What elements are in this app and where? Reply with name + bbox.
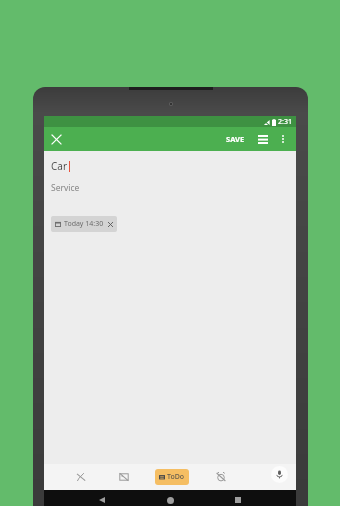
staticText: Car: [51, 159, 68, 173]
button[interactable]: Voice input: [271, 466, 288, 483]
button[interactable]: Home: [160, 490, 180, 506]
button[interactable]: Recents: [228, 490, 248, 506]
button[interactable]: List options: [254, 130, 272, 148]
button[interactable]: Attach: [70, 466, 92, 488]
staticText: ToDo: [167, 472, 185, 482]
button[interactable]: Back: [92, 490, 112, 506]
button[interactable]: More options: [274, 130, 292, 148]
button[interactable]: SAVE: [221, 130, 250, 148]
button[interactable]: Image: [113, 466, 135, 488]
staticText: Service: [51, 182, 80, 194]
staticText: Today 14:30: [64, 219, 104, 229]
other: Remove reminder: [108, 222, 113, 227]
button[interactable]: ToDo: [155, 469, 189, 485]
button[interactable]: Close: [44, 127, 68, 151]
staticText: 2:31: [278, 117, 292, 127]
button[interactable]: Alarm: [210, 466, 232, 488]
staticText: SAVE: [226, 134, 245, 144]
button[interactable]: Today 14:30: [51, 216, 117, 232]
